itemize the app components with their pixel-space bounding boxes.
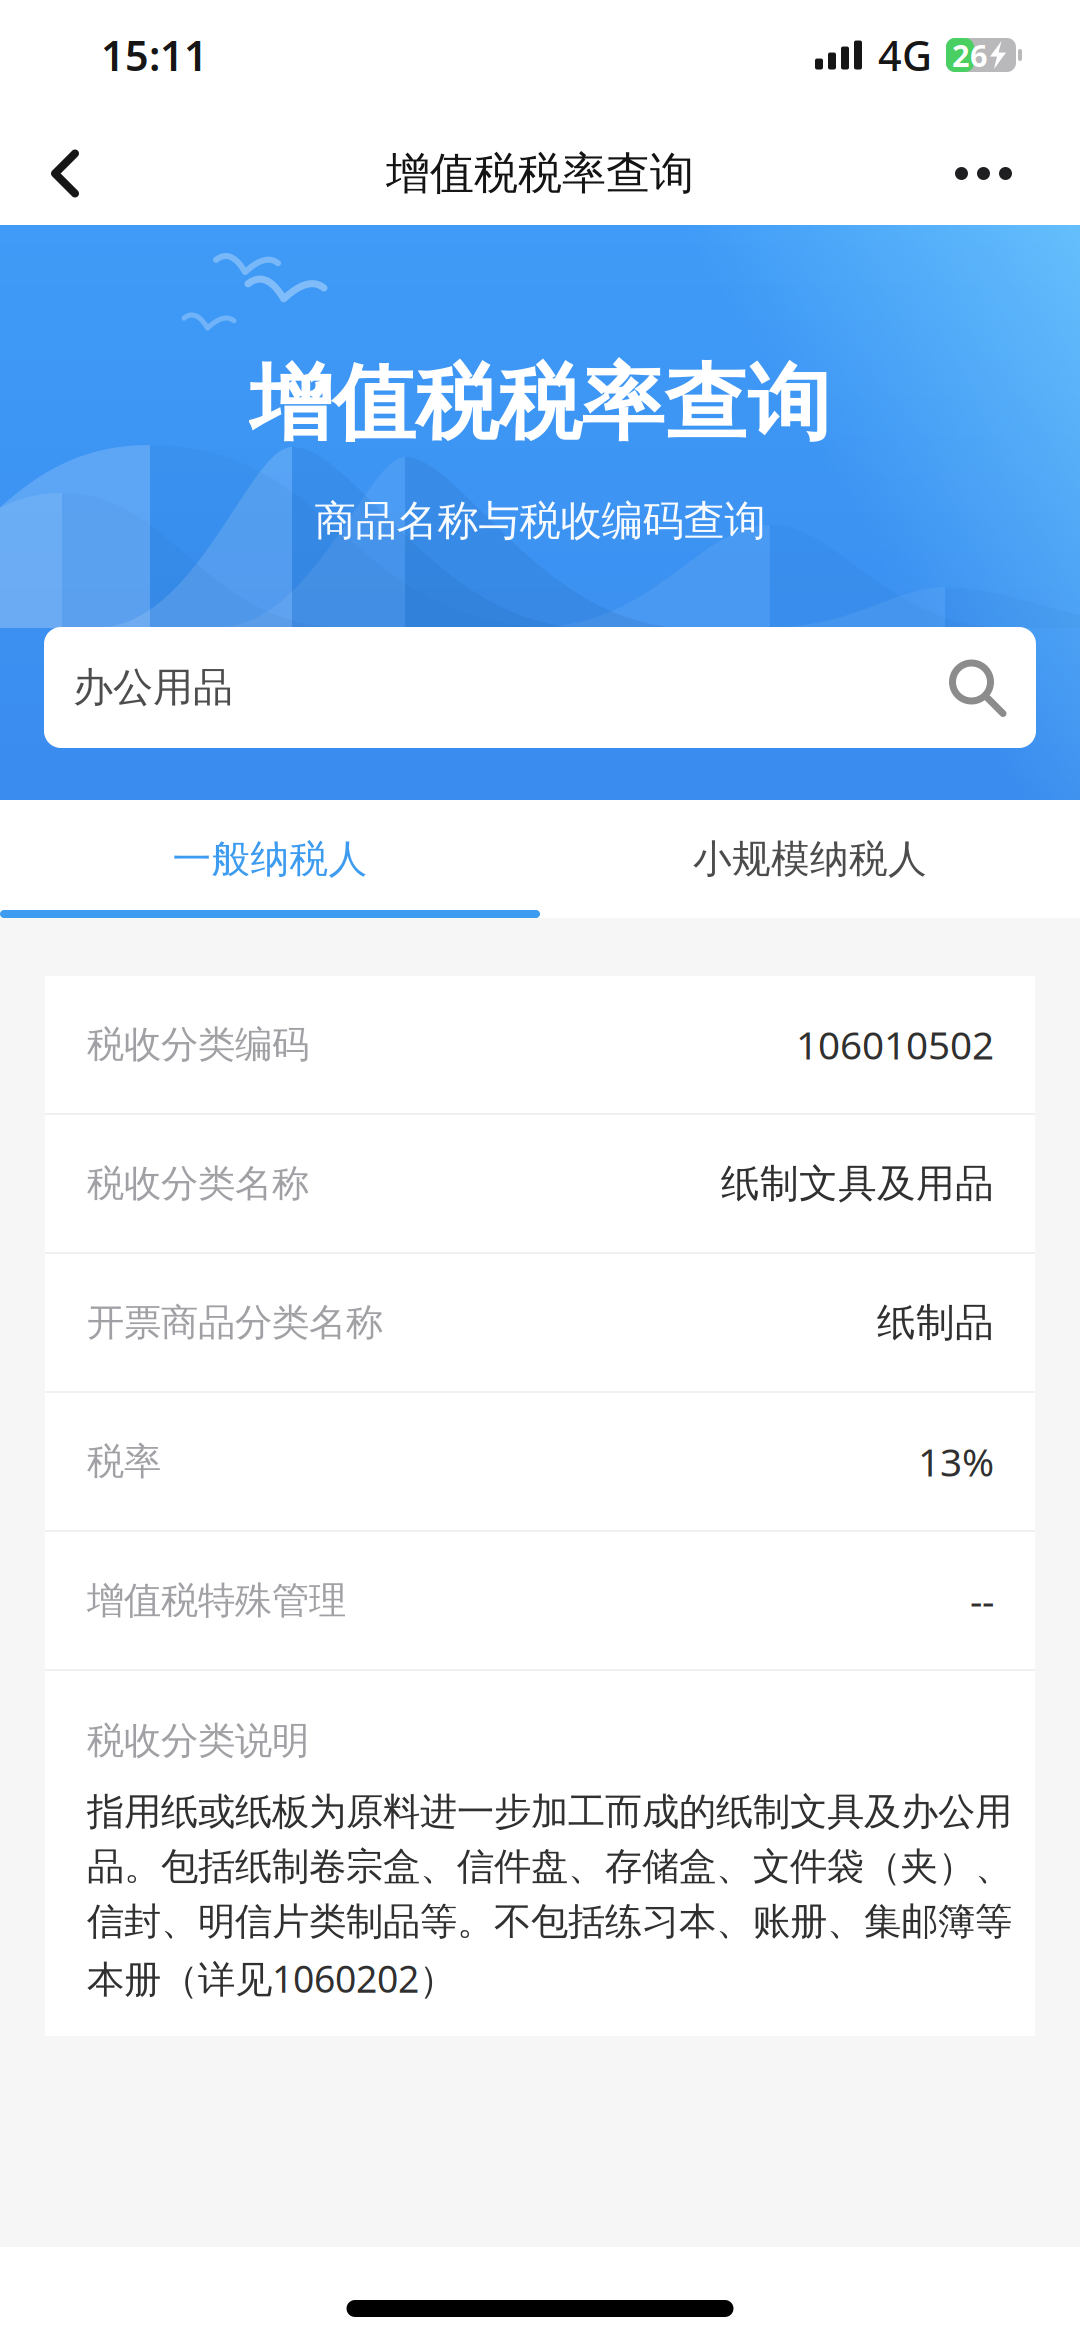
staticText: 一般纳税人 [172,835,367,883]
staticText: 26 [952,35,988,75]
staticText: 税收分类说明 [87,1718,309,1764]
button[interactable]: More options [909,116,1080,231]
staticText: 商品名称与税收编码查询 [314,495,765,546]
button[interactable]: 小规模纳税人 [540,800,1080,918]
staticText: 增值税税率查询 [249,353,830,454]
staticText: 税率 [87,1439,161,1484]
staticText: 开票商品分类名称 [87,1300,383,1345]
staticText: 指用纸或纸板为原料进一步加工而成的纸制文具及办公用品。包括纸制卷宗盒、信件盘、存… [87,1789,1012,2003]
staticText: 纸制品 [877,1299,994,1346]
staticText: -- [970,1575,994,1626]
staticText: 15:11 [101,28,208,82]
staticText: 13% [918,1436,994,1487]
staticText: 增值税税率查询 [386,146,694,200]
button[interactable]: Back [0,116,125,231]
staticText: 4G [878,28,932,82]
staticText: 税收分类名称 [87,1161,309,1206]
staticText: 增值税特殊管理 [87,1578,346,1623]
staticText: 小规模纳税人 [693,835,927,883]
staticText: 纸制文具及用品 [721,1160,994,1207]
button[interactable]: 一般纳税人 [0,800,540,918]
staticText: 106010502 [796,1019,994,1070]
staticText: 办公用品 [73,663,233,712]
staticText: 税收分类编码 [87,1022,309,1067]
